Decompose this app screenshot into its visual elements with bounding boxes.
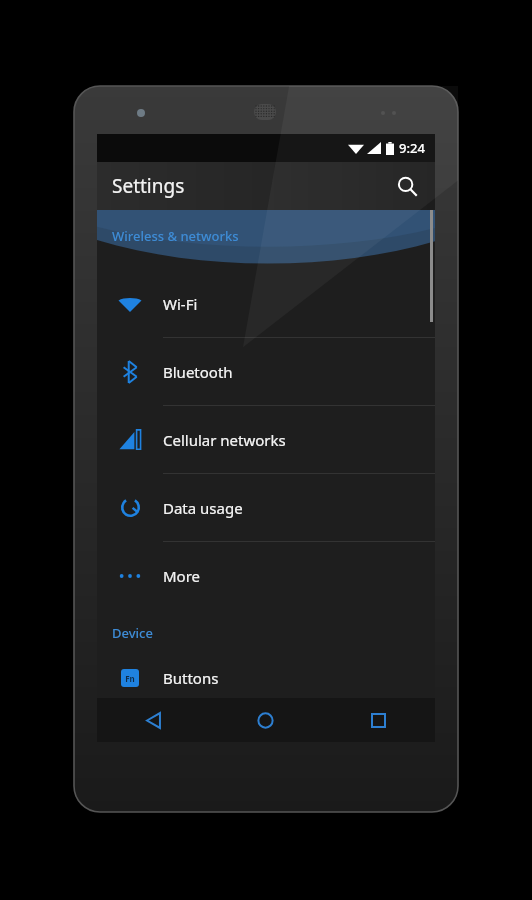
staticText: Settings bbox=[112, 173, 185, 199]
staticText: Wireless & networks bbox=[112, 227, 239, 245]
staticText: More bbox=[163, 566, 201, 586]
button[interactable]: Fn bbox=[97, 657, 435, 698]
button[interactable]: Cellular networks bbox=[97, 406, 435, 473]
button[interactable]: Data usage bbox=[97, 474, 435, 541]
button[interactable]: Back bbox=[97, 698, 209, 742]
staticText: 9:24 bbox=[399, 139, 425, 157]
button[interactable]: Recent apps bbox=[322, 698, 435, 742]
button[interactable]: Search bbox=[387, 166, 427, 206]
staticText: Buttons bbox=[163, 668, 219, 688]
staticText: Wi-Fi bbox=[163, 294, 198, 314]
staticText: Device bbox=[112, 624, 153, 642]
button[interactable]: More bbox=[97, 542, 435, 609]
staticText: Bluetooth bbox=[163, 362, 233, 382]
staticText: Cellular networks bbox=[163, 430, 286, 450]
button[interactable]: Home bbox=[209, 698, 322, 742]
staticText: Fn bbox=[125, 673, 135, 684]
staticText: Data usage bbox=[163, 498, 243, 518]
button[interactable]: Bluetooth bbox=[97, 338, 435, 405]
button[interactable]: Wi-Fi bbox=[97, 270, 435, 337]
